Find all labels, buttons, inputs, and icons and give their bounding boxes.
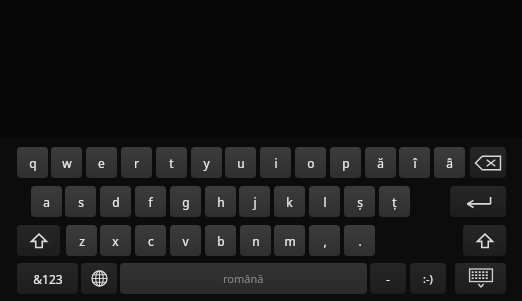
button[interactable]: w [51,147,82,178]
staticText: r [134,155,139,171]
button[interactable]: j [239,186,270,217]
button[interactable]: f [135,186,166,217]
button[interactable]: k [274,186,305,217]
button[interactable]: m [274,225,305,256]
button[interactable]: q [17,147,48,178]
button[interactable]: c [135,225,166,256]
staticText: - [386,271,390,287]
staticText: română [223,271,264,286]
staticText: q [29,155,37,171]
button[interactable]: y [191,147,222,178]
button[interactable]: - [370,263,406,294]
button[interactable]: h [205,186,236,217]
button[interactable]: Enter [450,186,506,217]
button[interactable]: n [240,225,271,256]
button[interactable]: x [100,225,131,256]
button[interactable]: b [205,225,236,256]
staticText: o [307,155,315,171]
staticText: k [286,194,293,210]
staticText: , [323,233,327,249]
button[interactable]: z [66,225,97,256]
button[interactable]: Change keyboard language [81,263,117,294]
staticText: n [252,233,260,249]
staticText: y [203,155,210,171]
staticText: w [62,155,72,171]
button[interactable]: i [260,147,291,178]
button[interactable]: g [170,186,201,217]
staticText: â [446,155,453,171]
button[interactable]: u [225,147,256,178]
staticText: f [148,194,153,210]
button[interactable]: â [434,147,465,178]
staticText: v [182,233,189,249]
button[interactable]: î [399,147,430,178]
button[interactable]: l [309,186,340,217]
staticText: i [274,155,278,171]
button[interactable]: a [31,186,62,217]
staticText: a [43,194,50,210]
staticText: e [98,155,105,171]
staticText: j [253,194,257,210]
button[interactable]: o [295,147,326,178]
staticText: ț [392,194,397,210]
button[interactable]: Hide keyboard [455,263,506,294]
staticText: t [169,155,174,171]
staticText: . [358,233,362,249]
button[interactable]: d [100,186,131,217]
staticText: &123 [33,271,63,287]
staticText: h [217,194,225,210]
button[interactable]: Space [120,263,367,294]
staticText: x [112,233,119,249]
button[interactable]: ț [379,186,410,217]
staticText: b [217,233,225,249]
staticText: ș [357,194,363,210]
staticText: ă [377,155,384,171]
button[interactable]: Shift [463,225,506,256]
staticText: g [182,194,190,210]
button[interactable]: s [65,186,96,217]
staticText: c [148,233,154,249]
button[interactable]: r [121,147,152,178]
staticText: s [78,194,84,210]
staticText: :-) [423,271,433,286]
button[interactable]: , [309,225,340,256]
button[interactable]: p [330,147,361,178]
button[interactable]: ă [365,147,396,178]
button[interactable]: . [344,225,375,256]
button[interactable]: :-) [410,263,446,294]
staticText: î [413,155,417,171]
button[interactable]: Backspace [470,147,506,178]
staticText: l [323,194,327,210]
button[interactable]: v [170,225,201,256]
button[interactable]: Shift [17,225,60,256]
button[interactable]: &123 [17,263,78,294]
button[interactable]: e [86,147,117,178]
staticText: p [342,155,350,171]
staticText: u [237,155,245,171]
staticText: d [112,194,120,210]
staticText: z [79,233,85,249]
button[interactable]: t [156,147,187,178]
staticText: m [284,233,296,249]
button[interactable]: ș [344,186,375,217]
